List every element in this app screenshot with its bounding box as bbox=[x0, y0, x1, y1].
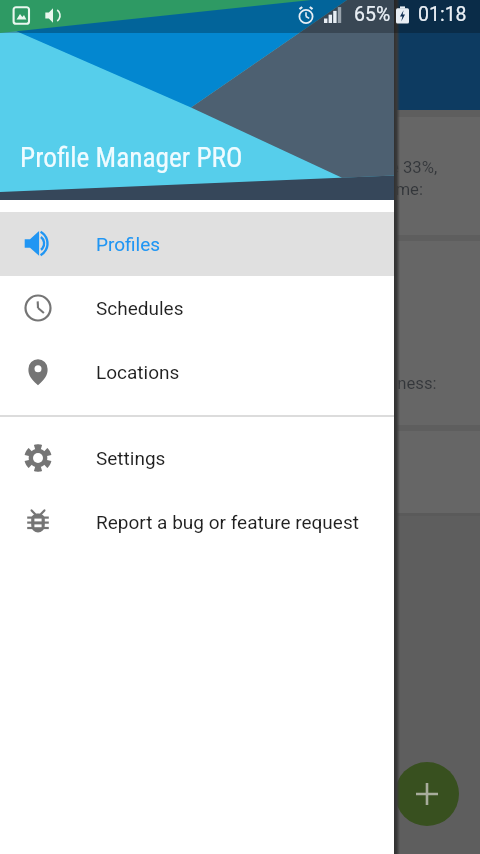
button[interactable]: Add profile bbox=[395, 762, 459, 826]
staticText: Locations bbox=[96, 361, 180, 383]
staticText: Settings bbox=[96, 447, 166, 469]
staticText: Ringer volume 33%, bbox=[293, 158, 438, 178]
staticText: Profiles bbox=[96, 233, 161, 255]
button[interactable]: Settings bbox=[0, 426, 394, 490]
button[interactable]: Schedules bbox=[0, 276, 394, 340]
staticText: 65% bbox=[354, 3, 391, 26]
button[interactable]: Locations bbox=[0, 340, 394, 404]
staticText: 01:18 bbox=[418, 3, 467, 26]
staticText: notification volume: bbox=[277, 180, 423, 200]
staticText: Report a bug or feature request bbox=[96, 511, 359, 533]
staticText: Screen brightness: bbox=[299, 374, 437, 394]
button[interactable]: Report a bug or feature request bbox=[0, 490, 394, 554]
staticText: Schedules bbox=[96, 297, 184, 319]
staticText: Profile Manager PRO bbox=[20, 142, 243, 174]
button[interactable]: Profiles bbox=[0, 212, 394, 276]
